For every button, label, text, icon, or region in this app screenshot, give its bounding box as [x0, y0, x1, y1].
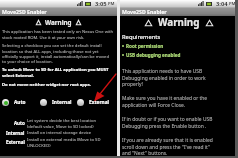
- staticText: Warning: [45, 18, 72, 27]
- staticText: Internal: [6, 130, 25, 135]
- staticText: Install on internal storage device: [27, 130, 92, 136]
- staticText: This application has been tested only on…: [2, 29, 114, 40]
- staticText: Make sure you have it enabled or the app…: [122, 95, 216, 108]
- staticText: PM: [229, 1, 236, 7]
- staticText: Let system decide the best location (def…: [27, 118, 97, 129]
- staticText: Requirements: [122, 33, 161, 41]
- staticText: Move2SD Enabler: [122, 8, 167, 15]
- button[interactable]: Auto: [2, 99, 40, 106]
- button[interactable]: External: [77, 99, 114, 106]
- staticText: Auto: [14, 99, 26, 106]
- staticText: Warning: [158, 16, 200, 29]
- staticText: External: [6, 139, 25, 145]
- staticText: PM: [108, 1, 115, 7]
- staticText: 3:05: [95, 0, 107, 7]
- staticText: If you are already sure that it is enabl…: [122, 137, 216, 156]
- staticText: If in doubt or if you want to enable USB…: [122, 116, 216, 129]
- staticText: Selecting a checkbox you can set the def…: [2, 43, 114, 64]
- staticText: To unlock Move to SD for ALL application…: [2, 67, 114, 78]
- staticText: Auto: [14, 120, 25, 126]
- staticText: External: [89, 99, 109, 106]
- staticText: This application needs to have USB Debug…: [122, 68, 216, 87]
- button[interactable]: Internal: [40, 99, 77, 106]
- staticText: 3:04: [216, 0, 228, 7]
- staticText: Move2SD Enabler: [2, 8, 47, 15]
- staticText: Install on external media (Move to SD UN…: [27, 137, 101, 148]
- staticText: Internal: [52, 99, 72, 106]
- staticText: Root permission: [126, 43, 164, 49]
- staticText: USB debugging enabled: [126, 52, 181, 58]
- staticText: Do not move neither widget nor root apps…: [2, 82, 114, 88]
